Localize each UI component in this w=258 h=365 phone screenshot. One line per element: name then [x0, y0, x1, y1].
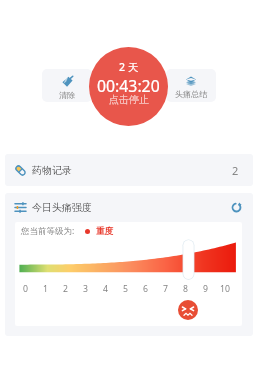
staticText: 7	[163, 283, 168, 295]
staticText: 2	[232, 163, 239, 178]
button[interactable]: 头痛总结	[166, 69, 216, 102]
button[interactable]: 药物记录	[5, 154, 253, 186]
staticText: 今日头痛强度	[32, 201, 92, 214]
staticText: 9	[203, 283, 208, 295]
staticText: 点击停止	[109, 93, 149, 106]
staticText: 00:43:20	[97, 75, 160, 97]
staticText: 1	[43, 283, 48, 295]
other: 刷新	[231, 202, 242, 213]
staticText: 0	[23, 283, 28, 295]
staticText: 3	[83, 283, 88, 295]
button[interactable]: 2 天	[89, 47, 168, 126]
staticText: 4	[103, 283, 108, 295]
staticText: 头痛总结	[175, 89, 207, 99]
button[interactable]: 清除	[42, 69, 92, 102]
staticText: 重度	[96, 226, 113, 237]
staticText: 5	[123, 283, 128, 295]
staticText: 10	[220, 283, 230, 295]
staticText: 您当前等级为:	[21, 225, 75, 237]
staticText: 2	[63, 283, 68, 295]
staticText: 8	[183, 283, 188, 295]
staticText: 6	[143, 283, 148, 295]
staticText: 2 天	[119, 60, 139, 74]
staticText: 药物记录	[32, 164, 72, 177]
staticText: 清除	[59, 90, 75, 100]
